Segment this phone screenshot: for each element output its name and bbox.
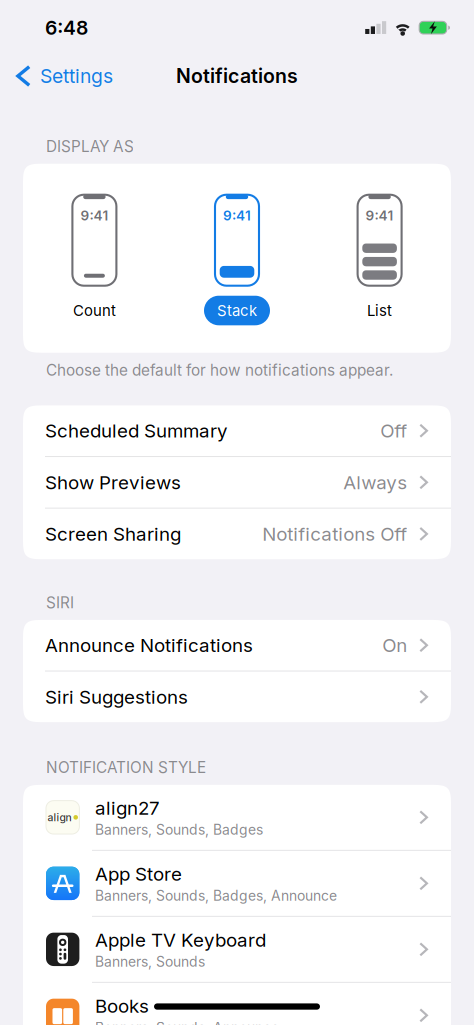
staticText: Banners, Sounds, Badges <box>95 821 263 838</box>
staticText: App Store <box>95 863 182 885</box>
staticText: align <box>47 811 71 824</box>
staticText: List <box>367 301 392 319</box>
staticText: Stack <box>217 301 257 319</box>
staticText: SIRI <box>46 593 74 612</box>
button[interactable]: App Store <box>23 851 451 916</box>
staticText: align27 <box>95 797 160 819</box>
staticText: Notifications Off <box>262 523 407 545</box>
staticText: NOTIFICATION STYLE <box>46 758 206 777</box>
button[interactable]: Show Previews <box>23 457 451 508</box>
staticText: 9:41 <box>366 207 394 224</box>
button[interactable]: 9:41 <box>308 194 451 325</box>
button[interactable]: Settings <box>0 53 125 99</box>
button[interactable]: Announce Notifications <box>23 620 451 670</box>
button[interactable]: Scheduled Summary <box>23 405 451 456</box>
staticText: On <box>382 634 407 656</box>
button[interactable]: 9:41 <box>23 194 166 325</box>
staticText: Banners, Sounds, Announce <box>95 1019 279 1025</box>
staticText: Books <box>95 995 149 1017</box>
staticText: Banners, Sounds, Badges, Announce <box>95 887 337 904</box>
staticText: Apple TV Keyboard <box>95 929 266 951</box>
staticText: Off <box>380 419 407 442</box>
staticText: Siri Suggestions <box>45 685 188 708</box>
button[interactable]: Books <box>23 983 451 1025</box>
staticText: Show Previews <box>45 471 181 494</box>
staticText: Screen Sharing <box>45 523 181 545</box>
staticText: 6:48 <box>45 16 88 39</box>
staticText: Count <box>73 301 116 319</box>
staticText: Settings <box>40 64 113 88</box>
staticText: Choose the default for how notifications… <box>46 361 393 379</box>
staticText: Notifications <box>176 64 298 88</box>
staticText: 9:41 <box>223 207 251 224</box>
button[interactable]: Siri Suggestions <box>23 671 451 722</box>
staticText: DISPLAY AS <box>46 137 134 156</box>
button[interactable]: Apple TV Keyboard <box>23 917 451 982</box>
button[interactable]: Screen Sharing <box>23 509 451 559</box>
staticText: Announce Notifications <box>45 634 253 656</box>
staticText: Banners, Sounds <box>95 953 205 970</box>
button[interactable]: align <box>23 785 451 850</box>
staticText: Scheduled Summary <box>45 419 228 442</box>
staticText: 9:41 <box>80 207 108 224</box>
button[interactable]: 9:41 <box>166 194 308 325</box>
staticText: Always <box>343 471 407 494</box>
